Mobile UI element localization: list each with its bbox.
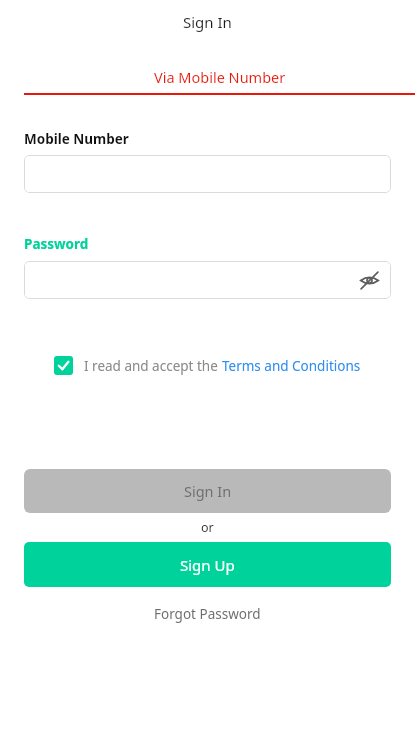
staticText: Sign In bbox=[183, 12, 232, 32]
staticText: Sign In bbox=[184, 481, 232, 501]
staticText: Sign Up bbox=[180, 555, 235, 575]
staticText: Password bbox=[24, 235, 89, 253]
staticText: Terms and Conditions bbox=[222, 357, 361, 375]
button[interactable]: Forgot Password bbox=[148, 599, 267, 629]
button[interactable]: Terms and Conditions bbox=[222, 357, 361, 375]
staticText: Via Mobile Number bbox=[154, 67, 286, 87]
button[interactable]: Via Mobile Number bbox=[24, 62, 415, 95]
staticText: Mobile Number bbox=[24, 130, 129, 148]
staticText: Forgot Password bbox=[154, 605, 261, 623]
button[interactable] bbox=[24, 155, 391, 193]
button[interactable]: Show password bbox=[24, 261, 391, 299]
button[interactable]: Sign In bbox=[24, 469, 391, 513]
button[interactable]: I read and accept the bbox=[54, 356, 222, 375]
button[interactable]: Sign Up bbox=[24, 542, 391, 587]
button[interactable]: Show password bbox=[353, 264, 385, 296]
staticText: or bbox=[201, 519, 214, 536]
staticText: I read and accept the bbox=[84, 357, 222, 375]
